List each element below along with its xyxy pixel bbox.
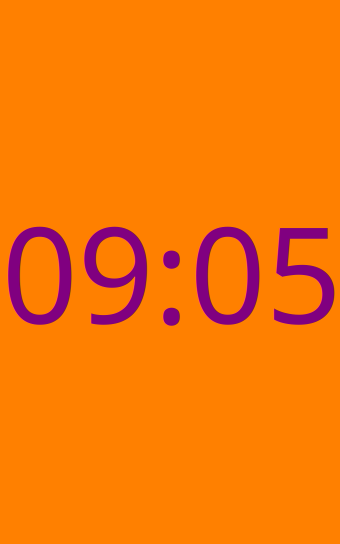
button[interactable]: 09:05	[0, 0, 340, 544]
staticText: 09:05	[1, 183, 340, 361]
